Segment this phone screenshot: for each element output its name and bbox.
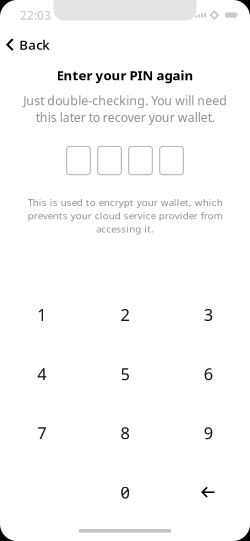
staticText: 2 [120, 303, 129, 326]
staticText: Just double-checking. You will need this… [23, 92, 227, 126]
button[interactable]: 6 [167, 344, 250, 403]
button[interactable]: 5 [83, 344, 167, 403]
staticText: 0 [120, 481, 129, 503]
button[interactable]: 0 [83, 463, 167, 522]
button[interactable]: Delete [167, 463, 250, 522]
button[interactable]: 9 [167, 403, 250, 463]
staticText: 22:03 [20, 7, 51, 23]
button[interactable]: 7 [0, 403, 83, 463]
button[interactable]: 3 [167, 285, 250, 344]
staticText: Enter your PIN again [56, 66, 193, 84]
button[interactable]: Back [0, 31, 58, 59]
button[interactable]: 2 [83, 285, 167, 344]
staticText: 6 [204, 363, 213, 385]
staticText: 7 [37, 422, 46, 444]
staticText: 3 [204, 303, 213, 326]
staticText: Back [19, 36, 49, 54]
staticText: 4 [37, 363, 46, 385]
staticText: This is used to encrypt your wallet, whi… [27, 195, 222, 235]
button[interactable]: 4 [0, 344, 83, 403]
button[interactable]: 1 [0, 285, 83, 344]
staticText: 8 [120, 422, 129, 444]
button[interactable]: 8 [83, 403, 167, 463]
staticText: 9 [204, 422, 213, 444]
staticText: 5 [120, 363, 129, 385]
staticText: 1 [37, 303, 46, 326]
